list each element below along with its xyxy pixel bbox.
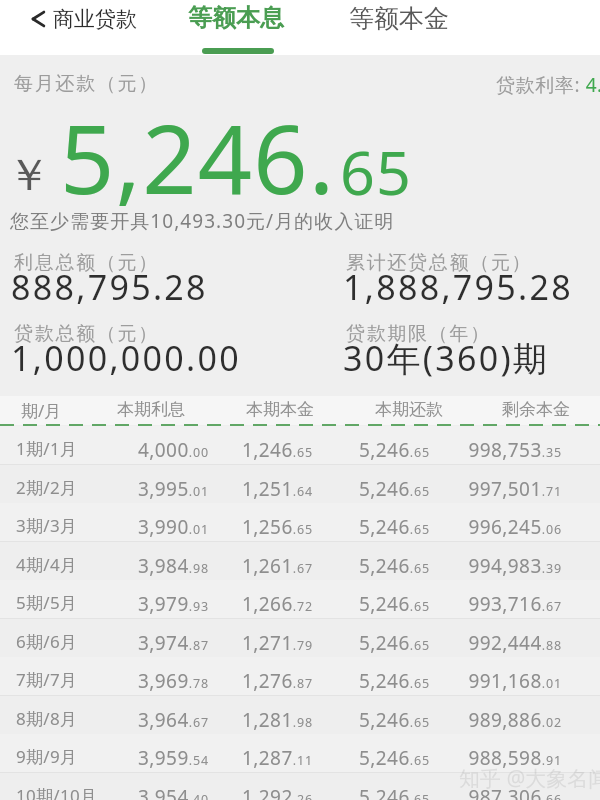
staticText: 987,306.66 [402,784,562,800]
button[interactable]: 4期/4月 [0,542,600,581]
other: 返回 [31,7,45,31]
button[interactable]: 本期利息 [117,399,185,420]
staticText: 5,246.65 [270,553,430,579]
staticText: 3期/3月 [16,514,78,537]
button[interactable]: 本期还款 [375,399,443,420]
staticText: 1,266.72 [153,591,313,617]
button[interactable]: 本期本金 [246,399,314,420]
staticText: 10期/10月 [16,784,98,800]
staticText: 991,168.01 [402,668,562,694]
staticText: 3,959.54 [49,745,209,771]
staticText: 5,246.65 [270,630,430,656]
button[interactable]: 7期/7月 [0,657,600,696]
button[interactable]: 等额本息 [174,0,302,55]
staticText: 7期/7月 [16,668,78,691]
button[interactable]: 1期/1月 [0,426,600,465]
button[interactable]: 10期/10月 [0,773,600,800]
staticText: 5期/5月 [16,591,78,614]
staticText: 1,000,000.00 [11,335,241,381]
staticText: 993,716.67 [402,591,562,617]
staticText: 贷款利率: 4. [496,72,600,98]
staticText: 3,979.93 [49,591,209,617]
staticText: 5,246.65 [270,437,430,463]
staticText: 5,246.65 [270,745,430,771]
button[interactable]: 2期/2月 [0,465,600,504]
staticText: 1,251.64 [153,476,313,502]
staticText: 888,795.28 [11,264,208,310]
staticText: 5,246.65 [270,476,430,502]
staticText: 等额本金 [349,3,449,34]
staticText: 5,246.65 [270,514,430,540]
staticText: 累计还贷总额（元） [346,251,533,275]
button[interactable]: 期/月 [21,399,62,422]
staticText: 3,954.40 [49,784,209,800]
staticText: 6期/6月 [16,630,78,653]
staticText: 30年(360)期 [343,335,550,381]
staticText: 3,990.01 [49,514,209,540]
staticText: 65 [340,130,413,213]
staticText: 998,753.35 [402,437,562,463]
button[interactable]: 3期/3月 [0,503,600,542]
button[interactable]: 剩余本金 [502,399,570,420]
staticText: ￥ [7,148,51,203]
staticText: 8期/8月 [16,707,78,730]
staticText: 4期/4月 [16,553,78,576]
staticText: 989,886.02 [402,707,562,733]
staticText: 1,256.65 [153,514,313,540]
staticText: 5,246.65 [270,784,430,800]
staticText: 997,501.71 [402,476,562,502]
staticText: 994,983.39 [402,553,562,579]
button[interactable]: 8期/8月 [0,696,600,735]
staticText: 1,276.87 [153,668,313,694]
button[interactable]: 返回 [23,0,145,40]
staticText: 988,598.91 [402,745,562,771]
staticText: 3,974.87 [49,630,209,656]
staticText: 商业贷款 [53,6,137,32]
staticText: 5,246. [60,92,336,221]
staticText: 1,246.65 [153,437,313,463]
button[interactable]: 等额本金 [333,0,465,55]
staticText: 利息总额（元） [14,251,159,275]
staticText: 贷款总额（元） [14,322,159,346]
button[interactable]: 6期/6月 [0,619,600,658]
staticText: 知乎 @大象名闻 [459,764,600,793]
staticText: 1,292.26 [153,784,313,800]
staticText: 3,984.98 [49,553,209,579]
staticText: 4,000.00 [49,437,209,463]
staticText: 1,271.79 [153,630,313,656]
staticText: 5,246.65 [270,668,430,694]
staticText: 1期/1月 [16,437,78,460]
staticText: 3,964.67 [49,707,209,733]
button[interactable]: 9期/9月 [0,734,600,773]
staticText: 等额本息 [188,3,284,33]
staticText: 1,287.11 [153,745,313,771]
staticText: 5,246.65 [270,591,430,617]
staticText: 3,995.01 [49,476,209,502]
staticText: 1,281.98 [153,707,313,733]
staticText: 1,261.67 [153,553,313,579]
staticText: 5,246.65 [270,707,430,733]
staticText: 1,888,795.28 [343,264,573,310]
staticText: 3,969.78 [49,668,209,694]
staticText: 2期/2月 [16,476,78,499]
staticText: 您至少需要开具10,493.30元/月的收入证明 [10,208,395,234]
staticText: 9期/9月 [16,745,78,768]
staticText: 992,444.88 [402,630,562,656]
staticText: 贷款期限（年） [346,322,491,346]
button[interactable]: 5期/5月 [0,580,600,619]
staticText: 每月还款（元） [14,72,159,96]
staticText: 996,245.06 [402,514,562,540]
